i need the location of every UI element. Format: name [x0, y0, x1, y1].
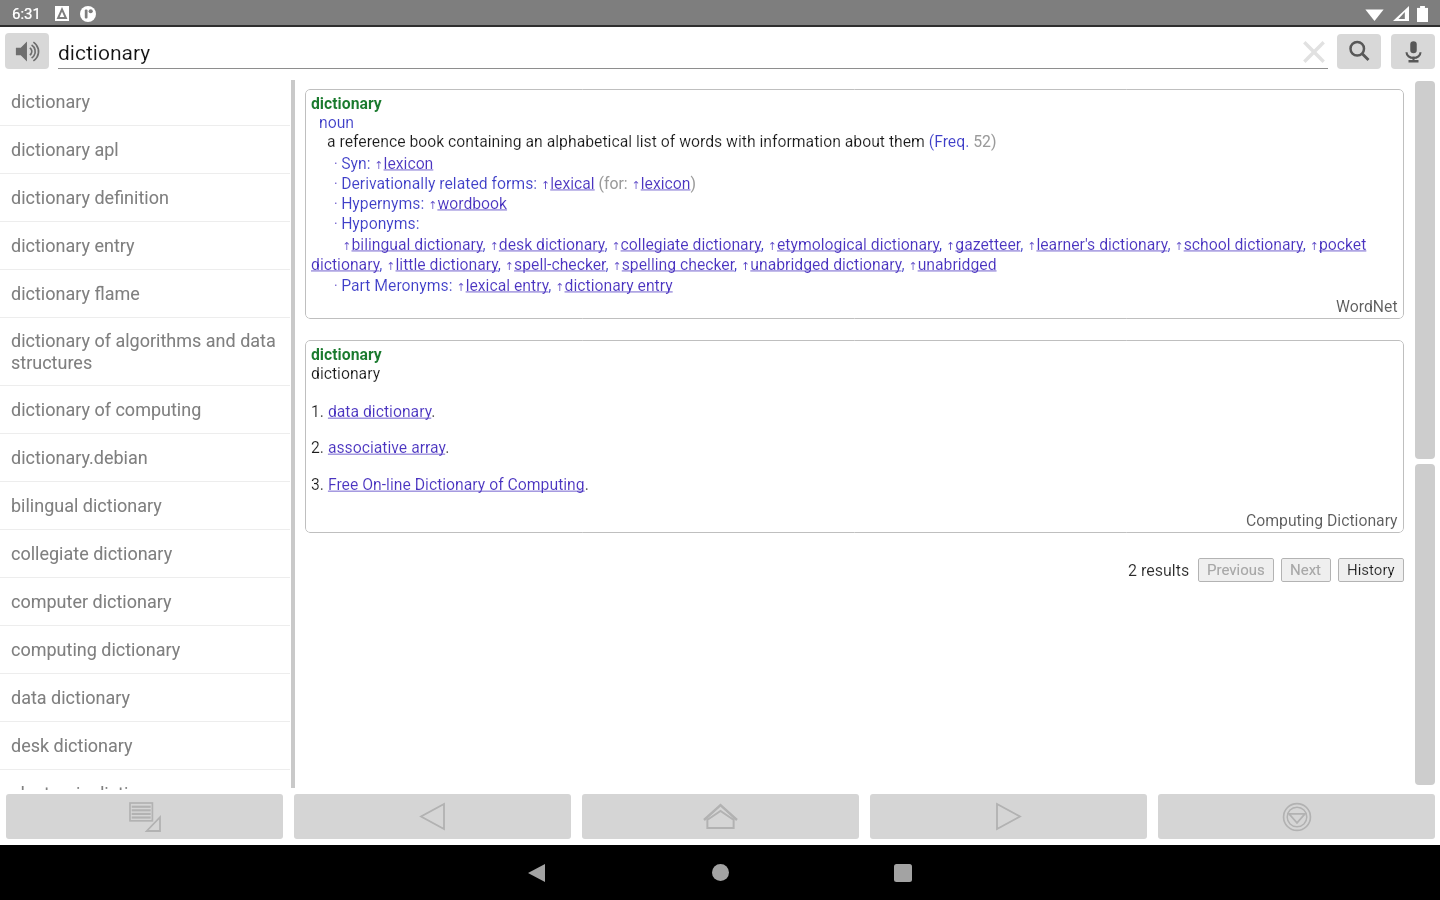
button[interactable]: Back [516, 845, 557, 900]
button[interactable]: Pronounce [5, 33, 49, 69]
button[interactable]: dictionary entry [0, 222, 290, 269]
staticText: 2 results [1128, 561, 1190, 580]
button[interactable]: data dictionary [0, 674, 290, 721]
staticText: Computing Dictionary [1246, 510, 1398, 530]
button[interactable]: Voice search [1391, 34, 1435, 69]
staticText: 3. Free On-line Dictionary of Computing. [311, 475, 589, 494]
staticText: bilingual dictionary [11, 494, 162, 516]
staticText: dictionary [311, 345, 382, 364]
button[interactable]: computing dictionary [0, 626, 290, 673]
button[interactable]: computer dictionary [0, 578, 290, 625]
button[interactable]: dictionary of computing [0, 386, 290, 433]
button[interactable]: dictionary definition [0, 174, 290, 221]
button[interactable]: dictionary [0, 78, 290, 125]
staticText: dictionary flame [11, 282, 140, 304]
staticText: a reference book containing an alphabeti… [327, 132, 997, 151]
staticText: · Hyponyms: [334, 213, 420, 233]
staticText: · Hypernyms: ↑wordbook [334, 193, 508, 213]
button[interactable]: Search [1337, 34, 1381, 69]
staticText: · Derivationally related forms: ↑lexical… [334, 173, 696, 193]
button[interactable]: dictionary.debian [0, 434, 290, 481]
staticText: data dictionary [11, 686, 131, 708]
staticText: dictionary of computing [11, 398, 202, 420]
staticText: · Syn: ↑lexicon [334, 153, 434, 173]
button[interactable]: Home [700, 845, 740, 900]
staticText: dictionary [11, 90, 90, 112]
button[interactable]: dictionary of algorithms and data struct… [0, 318, 290, 385]
button[interactable]: collegiate dictionary [0, 530, 290, 577]
staticText: collegiate dictionary [11, 542, 173, 564]
button[interactable]: electronic dictionary [0, 770, 290, 790]
button[interactable]: Menu [1158, 794, 1435, 839]
staticText: dictionary entry [11, 234, 135, 256]
button[interactable]: desk dictionary [0, 722, 290, 769]
staticText: · Part Meronyms: ↑lexical entry, ↑dictio… [334, 275, 673, 295]
staticText: History [1347, 561, 1395, 579]
staticText: noun [319, 113, 355, 132]
button[interactable]: History [1338, 558, 1404, 582]
staticText: Previous [1207, 561, 1265, 579]
button[interactable]: bilingual dictionary [0, 482, 290, 529]
staticText: dictionary.debian [11, 446, 148, 468]
staticText: Next [1290, 561, 1322, 579]
button[interactable]: Forward [870, 794, 1147, 839]
staticText: dictionary of algorithms and data struct… [11, 329, 277, 373]
button[interactable]: dictionary flame [0, 270, 290, 317]
staticText: dictionary [311, 364, 381, 383]
button[interactable]: Previous [1198, 558, 1274, 582]
staticText: dictionary [58, 41, 151, 66]
staticText: 6:31 [12, 5, 41, 23]
button[interactable]: Recent apps [883, 845, 923, 900]
button[interactable]: Back [294, 794, 571, 839]
staticText: computing dictionary [11, 638, 181, 660]
staticText: dictionary apl [11, 138, 119, 160]
staticText: desk dictionary [11, 734, 133, 756]
button[interactable]: Clear query [1300, 38, 1328, 66]
staticText: dictionary [311, 94, 382, 113]
staticText: ↑bilingual dictionary, ↑desk dictionary,… [311, 234, 1398, 274]
button[interactable]: Next [1281, 558, 1331, 582]
staticText: electronic dictionary [11, 782, 174, 790]
staticText: 1. data dictionary. [311, 402, 436, 421]
staticText: WordNet [1336, 296, 1398, 316]
staticText: dictionary definition [11, 186, 169, 208]
button[interactable]: Home [582, 794, 859, 839]
button[interactable]: dictionary apl [0, 126, 290, 173]
button[interactable]: Open pages [6, 794, 283, 839]
staticText: 2. associative array. [311, 438, 450, 457]
staticText: computer dictionary [11, 590, 172, 612]
